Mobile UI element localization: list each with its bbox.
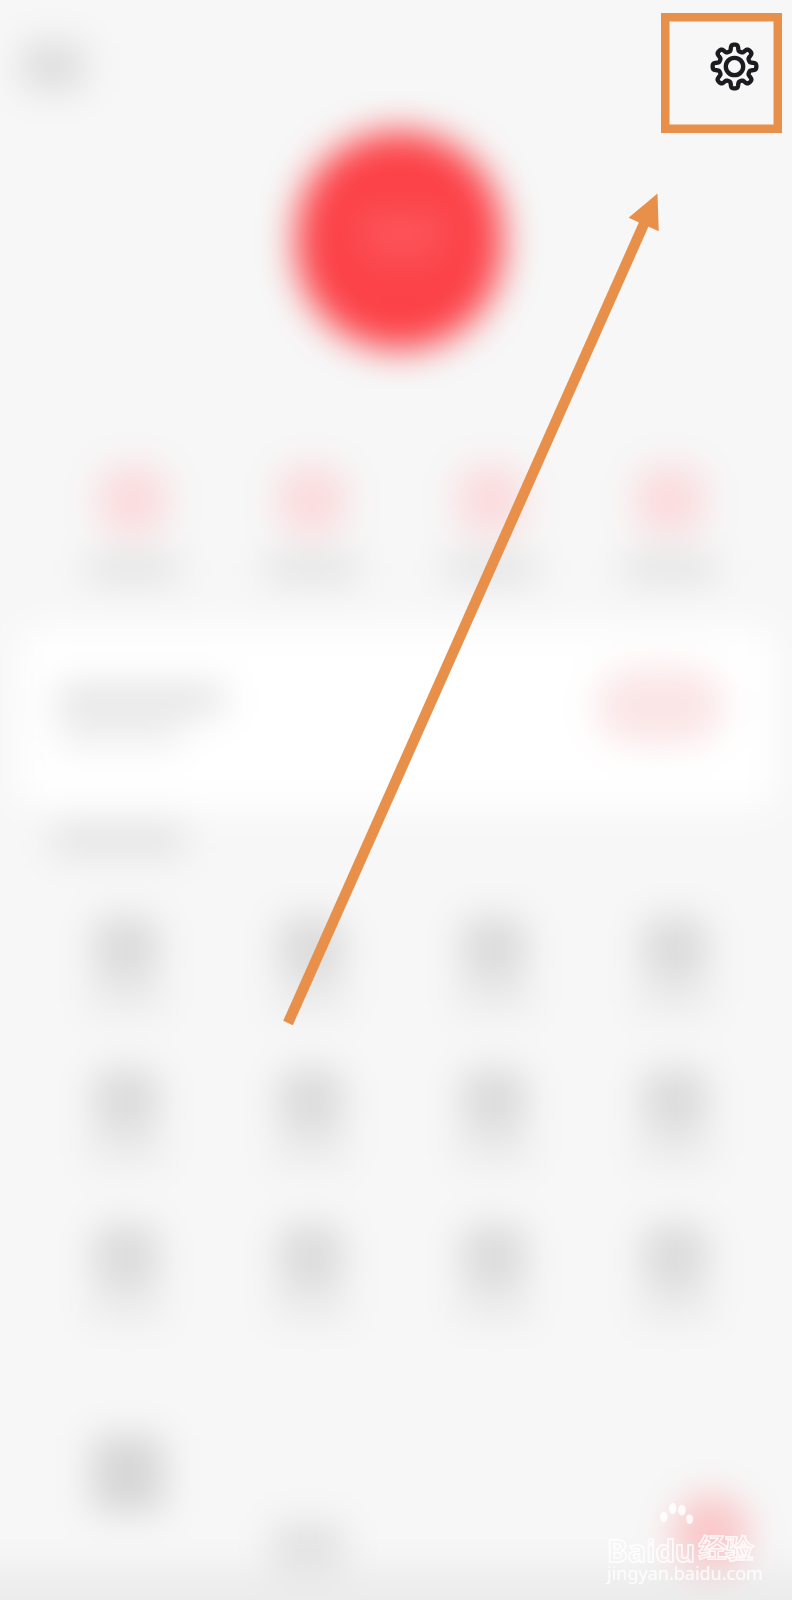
button[interactable] [223,884,399,1034]
button[interactable]: Settings [661,13,782,133]
button[interactable] [224,430,400,600]
button[interactable] [38,1192,214,1342]
button[interactable] [587,1192,763,1342]
button[interactable] [582,430,758,600]
button[interactable] [223,1192,399,1342]
button[interactable] [22,42,84,90]
staticText: Baidu [607,1529,696,1571]
button[interactable] [18,628,776,808]
button[interactable] [587,1036,763,1186]
button[interactable] [406,1036,582,1186]
button[interactable] [403,430,579,600]
button[interactable] [223,1036,399,1186]
button[interactable] [406,884,582,1034]
button[interactable] [38,884,214,1034]
button[interactable] [587,884,763,1034]
button[interactable] [45,430,221,600]
button[interactable] [406,1192,582,1342]
staticText: jingyan.baidu.com [607,1561,763,1586]
button[interactable] [296,131,503,350]
button[interactable] [38,1036,214,1186]
staticText: 经验 [699,1532,753,1566]
